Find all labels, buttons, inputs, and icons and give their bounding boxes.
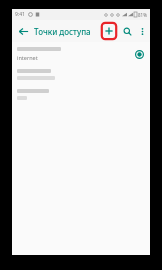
staticText: 9:41	[15, 11, 25, 18]
button[interactable]	[12, 61, 150, 80]
staticText: Точки доступа	[34, 26, 91, 37]
staticText: internet	[17, 54, 38, 61]
button[interactable]: Add	[101, 22, 117, 40]
staticText: 81%	[138, 12, 147, 18]
button[interactable]: Search	[119, 23, 135, 39]
button[interactable]	[12, 80, 150, 100]
button[interactable]: internet	[12, 42, 150, 61]
button[interactable]: Back	[12, 20, 34, 42]
button[interactable]: More options	[135, 24, 149, 38]
